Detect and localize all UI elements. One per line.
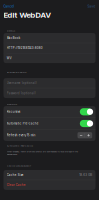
button[interactable]: Cancel — [3, 5, 14, 8]
staticText: Refresh every 15 min — [7, 133, 36, 137]
staticText: AUTHENTICATION — [7, 71, 27, 74]
staticText: OPTIONS — [7, 103, 17, 105]
staticText: Password (optional) — [7, 91, 36, 95]
button[interactable]: Username (optional) — [3, 78, 95, 88]
button[interactable]: Password (optional) — [3, 88, 95, 98]
staticText: CACHE MANAGEMENT — [7, 164, 31, 167]
staticText: Edit WebDAV — [3, 10, 51, 20]
button[interactable]: Refresh every 15 min — [3, 129, 95, 141]
button[interactable]: Increase refresh interval — [85, 132, 92, 138]
staticText: Save — [87, 5, 95, 8]
button[interactable]: Automatic Pre-cache — [3, 118, 95, 129]
staticText: Automatic Pre-cache — [7, 122, 39, 125]
staticText: 18.63 GB — [79, 173, 92, 177]
staticText: AUTOMATIC PRE-CACHE — [7, 144, 33, 147]
button[interactable]: Decrease refresh interval — [77, 132, 85, 138]
staticText: HTTP://192.168.1.143:8080 — [7, 46, 43, 50]
button[interactable]: Save — [87, 5, 95, 8]
button[interactable]: Cache Size — [3, 170, 95, 180]
staticText: Cancel — [3, 5, 14, 8]
button[interactable]: WV — [3, 53, 95, 63]
staticText: When enabled, newly browsed photos are d… — [7, 150, 78, 156]
staticText: MacBook — [7, 36, 20, 40]
button[interactable]: HTTP://192.168.1.143:8080 — [3, 43, 95, 53]
staticText: Username (optional) — [7, 81, 37, 85]
staticText: DETAILS — [7, 29, 15, 32]
staticText: Clear Cache — [7, 183, 26, 187]
staticText: WV — [7, 56, 12, 60]
staticText: Recursive — [7, 110, 21, 113]
staticText: Cache Size — [7, 173, 24, 177]
button[interactable]: Clear Cache — [3, 180, 95, 190]
button[interactable]: Recursive — [3, 106, 95, 117]
button[interactable]: MacBook — [3, 33, 95, 43]
